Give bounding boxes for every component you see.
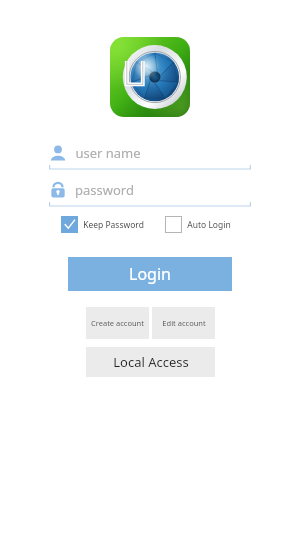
- button[interactable]: Edit account: [152, 307, 215, 339]
- button[interactable]: Create account: [86, 307, 149, 339]
- staticText: Create account: [91, 318, 144, 328]
- staticText: Auto Login: [187, 219, 231, 231]
- staticText: Local Access: [113, 353, 189, 371]
- button[interactable]: Password: [49, 177, 251, 207]
- staticText: Login: [129, 263, 171, 285]
- staticText: user name: [75, 144, 141, 162]
- button[interactable]: User name: [49, 140, 251, 170]
- button[interactable]: Local Access: [86, 347, 215, 377]
- other: User name: [49, 144, 67, 162]
- staticText: Keep Password: [83, 219, 144, 231]
- staticText: password: [75, 181, 134, 199]
- button[interactable]: Keep Password: [61, 216, 144, 233]
- button[interactable]: Login: [68, 257, 232, 291]
- staticText: Edit account: [162, 318, 206, 328]
- other: Password: [49, 181, 67, 199]
- button[interactable]: Auto Login: [165, 216, 231, 233]
